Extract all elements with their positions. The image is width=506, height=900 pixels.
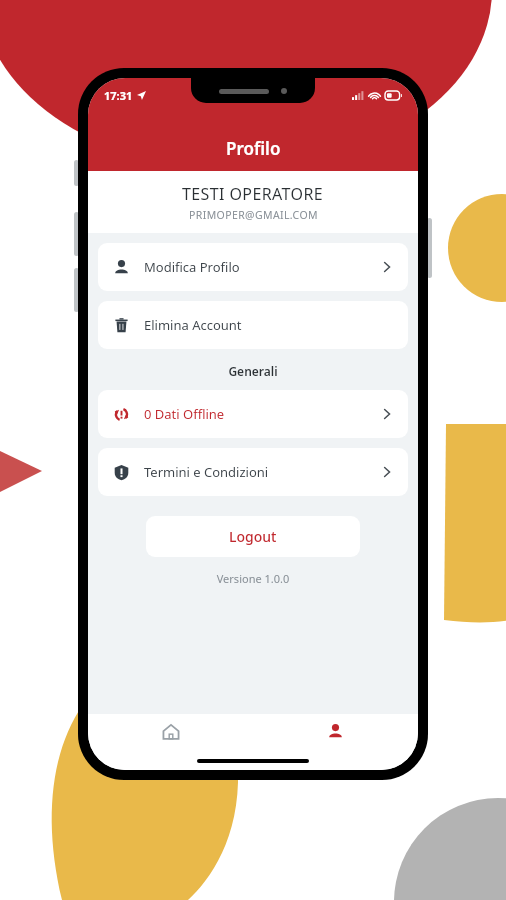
staticText: Versione 1.0.0: [98, 571, 408, 586]
button[interactable]: Profilo: [253, 723, 418, 740]
staticText: Termini e Condizioni: [144, 463, 269, 481]
staticText: 17:31: [104, 88, 133, 103]
button[interactable]: Elimina Account: [98, 301, 408, 349]
button[interactable]: Logout: [146, 516, 360, 557]
button[interactable]: Termini e Condizioni: [98, 448, 408, 496]
button[interactable]: 0 Dati Offline: [98, 390, 408, 438]
staticText: PRIMOPER@GMAIL.COM: [189, 208, 318, 222]
staticText: Logout: [229, 527, 277, 546]
button[interactable]: Home: [88, 723, 253, 741]
staticText: Elimina Account: [144, 316, 242, 334]
staticText: 0 Dati Offline: [144, 405, 225, 423]
staticText: TESTI OPERATORE: [182, 183, 324, 205]
staticText: Generali: [98, 363, 408, 379]
staticText: Profilo: [226, 137, 281, 160]
button[interactable]: Modifica Profilo: [98, 243, 408, 291]
staticText: Modifica Profilo: [144, 258, 240, 276]
